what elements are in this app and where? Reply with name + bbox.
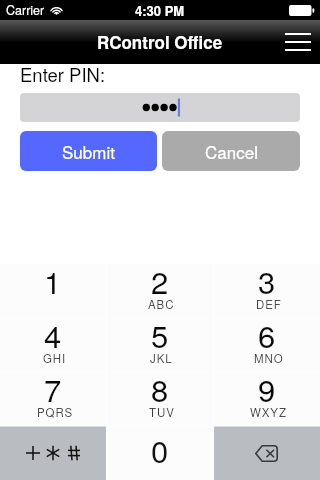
button[interactable]: Cancel bbox=[162, 131, 300, 171]
button[interactable]: 1 bbox=[0, 264, 106, 318]
staticText: Cancel bbox=[205, 139, 258, 163]
staticText: Carrier bbox=[6, 1, 45, 19]
button[interactable] bbox=[20, 93, 300, 122]
button[interactable]: 9 bbox=[213, 372, 320, 426]
staticText: WXYZ bbox=[250, 404, 287, 420]
button[interactable]: 8 bbox=[106, 372, 213, 426]
button[interactable]: Submit bbox=[20, 131, 157, 171]
button[interactable]: Symbols bbox=[0, 426, 106, 480]
staticText: RControl Office bbox=[97, 30, 223, 54]
staticText: 6 bbox=[258, 312, 276, 356]
staticText: 7 bbox=[44, 366, 62, 410]
button[interactable]: 6 bbox=[213, 318, 320, 372]
staticText: ABC bbox=[148, 296, 175, 312]
staticText: Enter PIN: bbox=[20, 61, 106, 87]
staticText: 9 bbox=[258, 366, 276, 410]
staticText: 1 bbox=[44, 258, 62, 302]
staticText: 4 bbox=[44, 312, 62, 356]
button[interactable]: Backspace bbox=[213, 426, 320, 480]
staticText: 8 bbox=[151, 366, 169, 410]
staticText: JKL bbox=[150, 350, 173, 366]
button[interactable]: 4 bbox=[0, 318, 106, 372]
staticText: DEF bbox=[256, 296, 282, 312]
button[interactable]: 5 bbox=[106, 318, 213, 372]
button[interactable]: 7 bbox=[0, 372, 106, 426]
staticText: MNO bbox=[254, 350, 284, 366]
staticText: 2 bbox=[151, 258, 169, 302]
staticText: TUV bbox=[149, 404, 175, 420]
button[interactable]: 0 bbox=[106, 426, 213, 480]
staticText: PQRS bbox=[37, 404, 74, 420]
staticText: GHI bbox=[43, 350, 67, 366]
staticText: 0 bbox=[151, 427, 169, 471]
staticText: 4:30 PM bbox=[135, 1, 185, 20]
staticText: 3 bbox=[258, 258, 276, 302]
staticText: 5 bbox=[151, 312, 169, 356]
button[interactable]: Menu bbox=[276, 20, 320, 64]
button[interactable]: 3 bbox=[213, 264, 320, 318]
button[interactable]: 2 bbox=[106, 264, 213, 318]
staticText: Submit bbox=[62, 139, 115, 163]
